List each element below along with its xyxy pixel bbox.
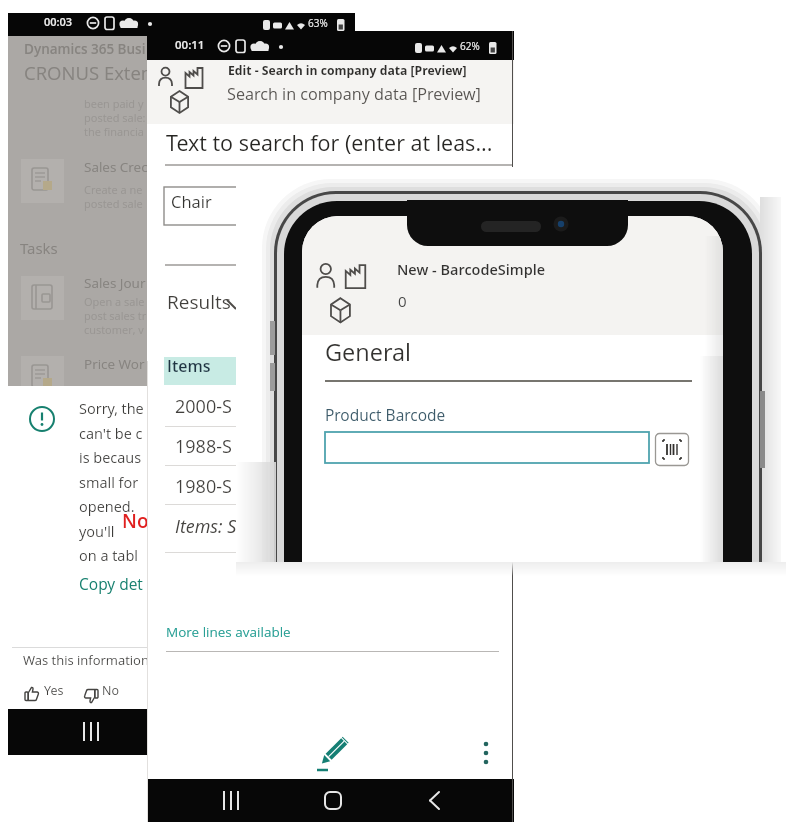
staticText: Tasks [20,238,58,258]
staticText: been paid y [84,96,144,111]
staticText: Was this information h [23,651,161,669]
staticText: No [122,508,149,534]
staticText: customer, v [84,322,144,337]
button[interactable]: 1980-S [175,474,232,499]
staticText: 63% [308,16,328,30]
staticText: can't be c [79,424,143,444]
staticText: Open a sale [84,294,145,309]
button[interactable] [428,791,442,811]
staticText: Price Wor [84,355,145,373]
staticText: post sales tr [84,308,147,323]
staticText: Items [167,355,211,377]
staticText: 0 [398,291,407,311]
button[interactable]: 1988-S [175,434,232,459]
staticText: is becaus [79,448,142,468]
staticText: CRONUS Extenc [24,60,161,85]
button[interactable] [221,791,241,811]
button[interactable]: 2000-S [175,394,232,419]
staticText: Chair [171,190,212,212]
staticText: 00:11 [175,37,205,53]
staticText: the financia [84,124,144,139]
button[interactable] [81,722,101,742]
staticText: posted sale [84,196,143,211]
button[interactable]: No [102,682,119,699]
staticText: Product Barcode [325,404,446,425]
button[interactable]: Copy det [79,573,143,594]
button[interactable] [477,736,495,772]
staticText: Search in company data [Preview] [227,83,481,105]
staticText: General [325,336,412,368]
staticText: Results [167,289,231,315]
staticText: Sales Jour [84,274,146,292]
staticText: opened. [79,497,135,517]
staticText: 00:03 [44,14,73,29]
staticText: you'll [79,522,115,542]
staticText: New - BarcodeSimple [397,260,546,280]
staticText: on a tabl [79,546,138,566]
button[interactable] [21,276,64,320]
button[interactable]: More lines available [166,623,291,641]
button[interactable] [21,159,64,203]
button[interactable]: Chair [164,187,507,225]
button[interactable] [307,729,359,781]
staticText: Sorry, the [79,399,144,419]
staticText: Sales Crec [84,158,148,176]
staticText: Edit - Search in company data [Preview] [228,62,467,79]
staticText: Items: S [175,514,237,539]
staticText: posted sale: [84,110,146,125]
button[interactable] [325,432,649,463]
button[interactable]: Yes [44,682,64,699]
staticText: Dynamics 365 Busi [24,40,146,58]
button[interactable] [324,791,343,810]
staticText: Text to search for (enter at leas... [166,128,493,157]
staticText: small for [79,473,139,493]
staticText: 62% [460,39,480,53]
staticText: Create a ne [84,182,143,197]
button[interactable] [655,433,689,466]
